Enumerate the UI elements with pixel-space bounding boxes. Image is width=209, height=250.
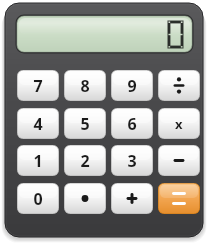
button[interactable]: 6 xyxy=(111,108,153,139)
staticText: 5 xyxy=(80,113,90,135)
staticText: 3 xyxy=(127,150,137,172)
staticText: 4 xyxy=(33,113,43,135)
button[interactable]: Add xyxy=(111,183,153,214)
staticText: 2 xyxy=(80,150,90,172)
button[interactable]: 5 xyxy=(64,108,106,139)
button[interactable]: 1 xyxy=(17,145,59,176)
button[interactable]: 0 xyxy=(17,183,59,214)
button[interactable]: Decimal point xyxy=(64,183,106,214)
staticText: 1 xyxy=(33,150,43,172)
button[interactable]: 8 xyxy=(64,70,106,101)
button[interactable]: 3 xyxy=(111,145,153,176)
button[interactable]: Equals xyxy=(158,183,200,214)
button[interactable]: 7 xyxy=(17,70,59,101)
staticText: 7 xyxy=(33,75,43,97)
button[interactable]: Divide xyxy=(158,70,200,101)
button[interactable]: 9 xyxy=(111,70,153,101)
staticText: 0 xyxy=(33,188,43,210)
button[interactable]: Multiply xyxy=(158,108,200,139)
button[interactable]: 2 xyxy=(64,145,106,176)
button[interactable]: Subtract xyxy=(158,145,200,176)
button[interactable]: 4 xyxy=(17,108,59,139)
staticText: 9 xyxy=(127,75,137,97)
staticText: 8 xyxy=(80,75,90,97)
staticText: x xyxy=(175,115,183,133)
staticText: 6 xyxy=(127,113,137,135)
